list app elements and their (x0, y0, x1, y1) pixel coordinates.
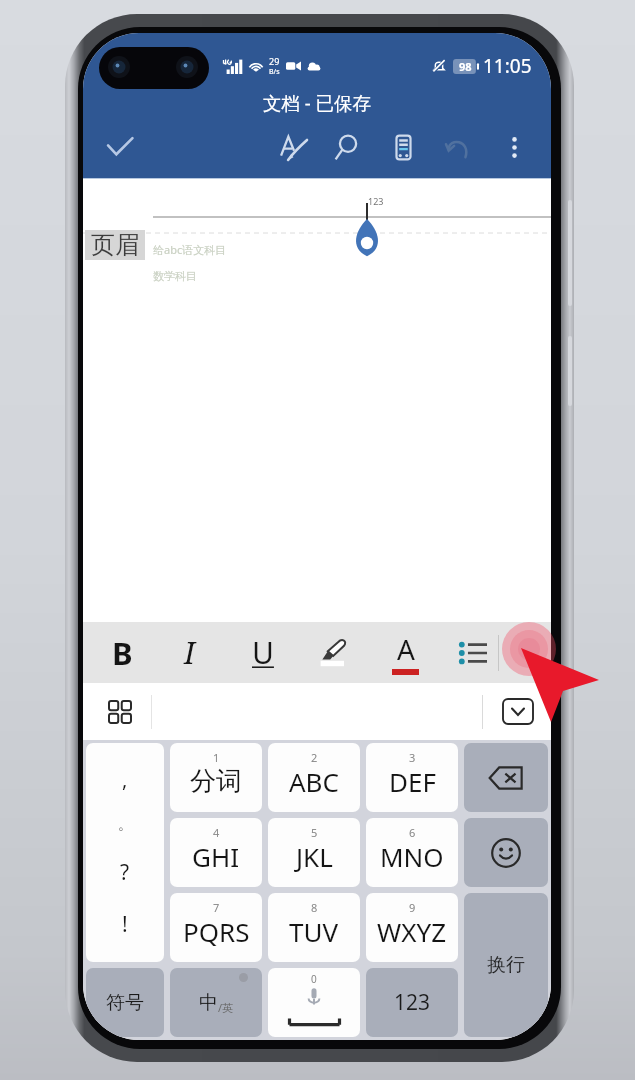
staticText: WXYZ (377, 914, 447, 949)
button[interactable]: MNO (366, 818, 458, 887)
button[interactable]: GHI (170, 818, 262, 887)
button[interactable]: TUV (268, 893, 360, 962)
button[interactable]: 中 (170, 968, 262, 1037)
button[interactable]: PQRS (170, 893, 262, 962)
staticText: A (397, 630, 415, 668)
staticText: 文档 - 已保存 (263, 90, 372, 115)
button[interactable]: WXYZ (366, 893, 458, 962)
button[interactable]: 换行 (464, 893, 548, 1037)
staticText: DEF (389, 764, 436, 799)
staticText: B (112, 632, 133, 674)
staticText: 1 (213, 750, 220, 765)
staticText: 5 (311, 825, 318, 840)
staticText: B/s (269, 67, 280, 77)
button[interactable]: Backspace (464, 743, 548, 812)
button[interactable]: Search (321, 116, 373, 178)
staticText: 中 (199, 991, 218, 1015)
button[interactable]: Hide keyboard (492, 683, 544, 740)
button[interactable]: Font color (375, 622, 435, 683)
button[interactable]: 符号 (86, 968, 164, 1037)
staticText: 11:05 (483, 53, 532, 79)
staticText: ! (122, 910, 128, 939)
staticText: I (184, 632, 196, 673)
staticText: 2 (311, 750, 318, 765)
staticText: 0 (311, 972, 317, 986)
staticText: 3 (409, 750, 416, 765)
button[interactable]: More formatting (499, 622, 551, 683)
staticText: 8 (311, 900, 318, 915)
staticText: 换行 (487, 953, 525, 977)
staticText: ABC (289, 764, 339, 799)
staticText: 98 (459, 59, 472, 74)
staticText: 29 (269, 55, 280, 67)
button[interactable]: Underline (233, 622, 293, 683)
button[interactable]: Space (268, 968, 360, 1037)
staticText: 9 (409, 900, 416, 915)
button[interactable]: Done (89, 116, 151, 178)
staticText: , (122, 766, 128, 793)
staticText: ? (120, 858, 130, 887)
staticText: 给abc语文科目 (153, 242, 227, 257)
button[interactable]: ABC (268, 743, 360, 812)
staticText: 6 (409, 825, 416, 840)
staticText: PQRS (183, 914, 250, 949)
button[interactable]: Undo (433, 116, 485, 178)
staticText: 4 (213, 825, 220, 840)
staticText: 页眉 (91, 230, 139, 260)
staticText: 123 (368, 195, 384, 207)
button[interactable]: Highlight (305, 622, 365, 683)
staticText: /英 (218, 1000, 234, 1015)
staticText: 分词 (190, 765, 242, 798)
button[interactable]: 123 (366, 968, 458, 1037)
staticText: 7 (213, 900, 220, 915)
button[interactable]: More (488, 116, 540, 178)
button[interactable]: Edit (267, 116, 319, 178)
button[interactable]: JKL (268, 818, 360, 887)
staticText: MNO (380, 839, 444, 874)
button[interactable]: DEF (366, 743, 458, 812)
staticText: GHI (192, 839, 240, 874)
button[interactable]: Bold (92, 622, 152, 683)
staticText: U (252, 632, 274, 673)
staticText: JKL (296, 839, 333, 874)
button[interactable]: , (86, 743, 164, 962)
button[interactable]: 分词 (170, 743, 262, 812)
button[interactable]: Italic (160, 622, 220, 683)
staticText: TUV (289, 914, 339, 949)
staticText: 符号 (106, 991, 144, 1015)
button[interactable]: Bulleted list (443, 622, 503, 683)
staticText: 。 (118, 816, 132, 834)
staticText: 数学科目 (153, 269, 197, 283)
staticText: 123 (394, 988, 431, 1017)
button[interactable]: Emoji (464, 818, 548, 887)
button[interactable]: Keyboard menu (94, 683, 146, 740)
button[interactable]: Read mode (377, 116, 429, 178)
